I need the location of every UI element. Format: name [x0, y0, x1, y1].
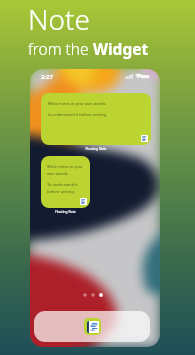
- button[interactable]: Write notes in your own words.: [41, 156, 90, 208]
- staticText: 2:27: [41, 73, 53, 81]
- staticText: Floating Note: [41, 209, 90, 213]
- staticText: to understand it before writing.: [48, 112, 107, 117]
- button[interactable]: Floating Note app: [84, 318, 101, 335]
- staticText: Floating Note: [41, 146, 151, 150]
- staticText: Note: [28, 0, 90, 38]
- staticText: Write notes in your own words.: [48, 101, 107, 106]
- staticText: Widget: [93, 38, 149, 59]
- staticText: Write notes in your own words.: [47, 164, 83, 176]
- button[interactable]: Write notes in your own words.: [41, 93, 151, 145]
- staticText: To understand it before writing.: [47, 182, 78, 194]
- staticText: from the: [28, 38, 93, 59]
